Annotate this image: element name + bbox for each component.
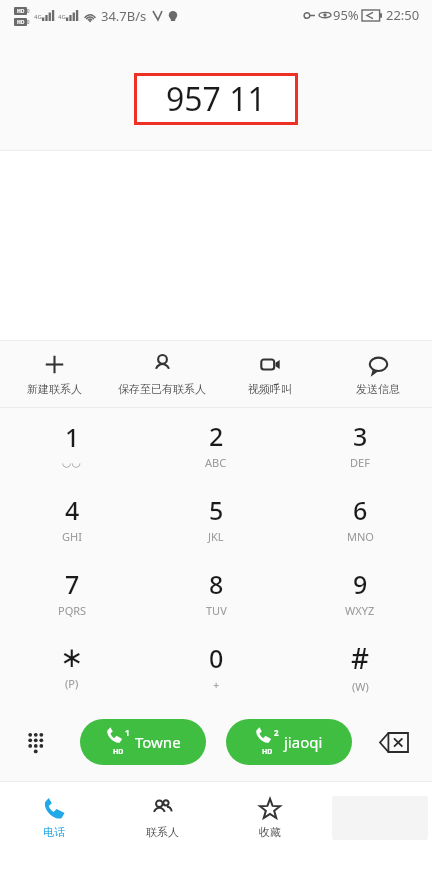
staticText: ₀ [27,16,30,26]
staticText: HD [17,19,25,26]
button[interactable]: 联系人 [108,782,216,854]
staticText: 8 [209,567,224,601]
button[interactable]: ∗ [0,629,144,703]
staticText: 4 [65,493,80,527]
button[interactable]: 发送信息 [324,341,432,407]
staticText: ₀ [27,5,30,15]
staticText: 3 [353,419,368,453]
button[interactable]: 8 [144,555,288,629]
staticText: ◡◡ [62,456,82,469]
staticText: 保存至已有联系人 [118,382,206,396]
staticText: 22:50 [386,6,420,24]
staticText: 34.7B/s [101,7,147,25]
staticText: WXYZ [345,603,375,618]
button[interactable]: 3 [288,408,432,481]
staticText: 视频呼叫 [248,382,292,396]
staticText: 发送信息 [356,382,400,396]
button[interactable]: 6 [288,481,432,555]
button[interactable]: 1 [0,408,144,481]
staticText: JKL [208,529,224,544]
staticText: 新建联系人 [27,382,82,396]
button[interactable]: 2 [144,408,288,481]
staticText: + [213,677,220,692]
button[interactable]: 0 [144,629,288,703]
staticText: HD [262,747,273,757]
staticText: (W) [352,679,369,694]
staticText: TUV [206,603,227,618]
staticText: 4G [34,13,42,21]
staticText: 957 11 [166,77,266,121]
button[interactable]: # [288,629,432,703]
button[interactable]: 视频呼叫 [216,341,324,407]
button[interactable]: 收藏 [216,782,324,854]
button[interactable]: 5 [144,481,288,555]
staticText: 0 [209,641,224,675]
staticText: 5 [209,493,224,527]
staticText: PQRS [58,603,87,618]
staticText: HD [17,8,25,15]
staticText: MNO [347,529,374,544]
staticText: 1 [65,420,80,454]
staticText: ∗ [60,641,84,674]
staticText: Towne [135,732,181,752]
staticText: 4G [58,13,66,21]
staticText: 2 [209,419,224,453]
staticText: 1 [125,727,130,738]
button[interactable]: 保存至已有联系人 [108,341,216,407]
staticText: GHI [62,529,82,544]
button[interactable]: 7 [0,555,144,629]
button[interactable]: 9 [288,555,432,629]
staticText: 收藏 [259,825,281,839]
staticText: jiaoqi [284,732,323,752]
staticText: 2 [274,727,279,738]
button[interactable] [324,782,432,854]
staticText: HD [113,747,124,757]
staticText: ABC [205,455,227,470]
button[interactable]: Delete [372,720,416,764]
staticText: 联系人 [146,825,179,839]
button[interactable]: 电话 [0,782,108,854]
button[interactable]: 1 [80,719,206,765]
staticText: (P) [65,676,79,691]
button[interactable]: 新建联系人 [0,341,108,407]
staticText: 95% [333,6,359,24]
staticText: DEF [350,455,370,470]
button[interactable]: Hide keypad [16,721,58,763]
staticText: 电话 [43,825,65,839]
staticText: 6 [353,493,368,527]
staticText: 7 [65,567,80,601]
staticText: 9 [353,567,368,601]
staticText: # [351,639,370,677]
button[interactable]: 4 [0,481,144,555]
button[interactable]: 2 [226,719,352,765]
